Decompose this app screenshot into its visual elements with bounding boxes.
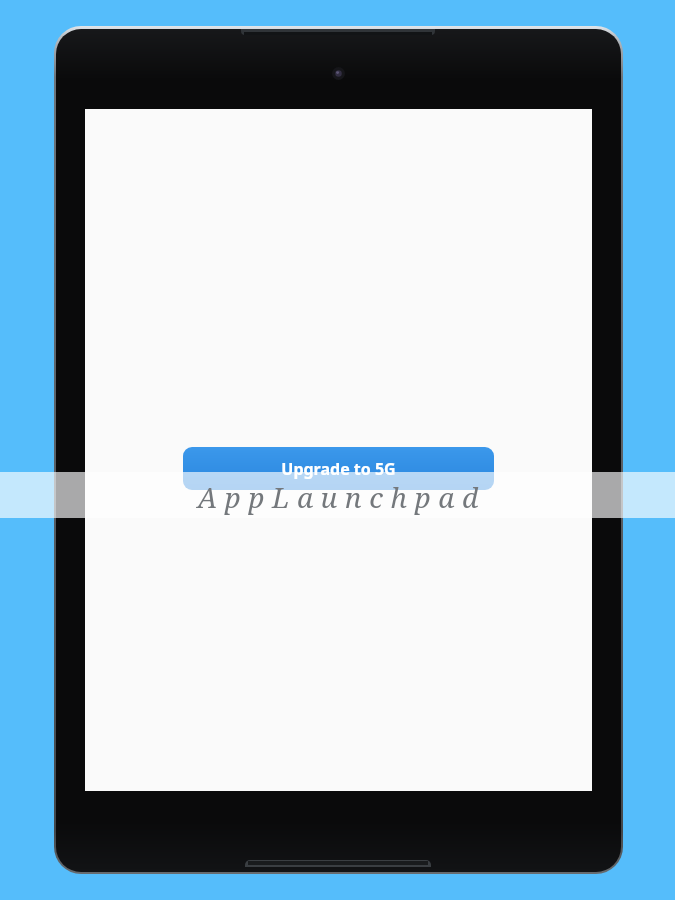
staticText: Upgrade to 5G	[281, 458, 396, 480]
other: Front camera	[332, 67, 345, 80]
button[interactable]	[183, 447, 494, 490]
staticText: AppLaunchpad	[197, 478, 486, 516]
